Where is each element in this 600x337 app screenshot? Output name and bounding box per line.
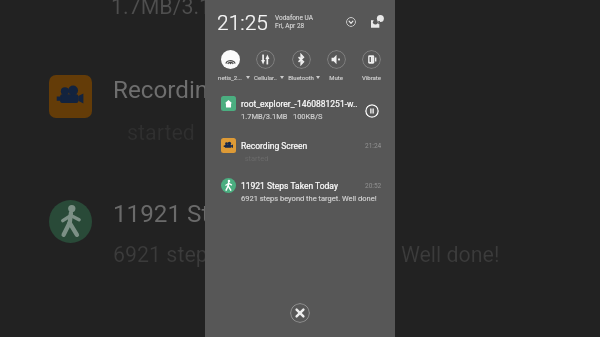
staticText: started: [127, 120, 195, 145]
button[interactable]: Cellular data: [256, 50, 275, 69]
staticText: 6921 steps beyond the target. Well done!: [241, 194, 391, 203]
button[interactable]: Wi-Fi: [221, 50, 240, 69]
staticText: 11921 Steps Taken Today: [241, 181, 365, 191]
button[interactable]: 11921 Steps Taken Today: [205, 172, 395, 207]
staticText: Bluetooth: [288, 74, 314, 81]
button[interactable]: Settings: [371, 15, 384, 28]
staticText: root_explorer_-1460881251-w..: [241, 99, 363, 109]
staticText: Recording Screen: [113, 76, 302, 104]
staticText: 1.7MB/3.1MB 100KB/S: [241, 112, 391, 121]
button[interactable]: Vibrate: [362, 50, 381, 69]
staticText: 20:52: [365, 182, 382, 190]
staticText: 21:24: [365, 142, 382, 150]
button[interactable]: Clear all notifications: [290, 303, 310, 323]
button[interactable]: Pause download: [365, 104, 379, 118]
staticText: Vodafone UA: [275, 14, 313, 22]
staticText: Cellular..: [254, 74, 277, 81]
button[interactable]: Bluetooth: [292, 50, 311, 69]
staticText: 1.7MB/3.1MB 100KB/S: [111, 0, 344, 19]
staticText: netis_2...: [218, 74, 242, 81]
button[interactable]: Expand quick settings: [346, 17, 356, 27]
button[interactable]: root_explorer_-1460881251-w..: [205, 90, 395, 125]
button[interactable]: Mute: [327, 50, 346, 69]
button[interactable]: Recording Screen: [205, 132, 395, 167]
staticText: 6921 steps beyond the target. Well done!: [113, 242, 500, 267]
staticText: 11921 Steps Taken Today: [113, 200, 390, 228]
staticText: Mute: [329, 74, 343, 81]
staticText: Vibrate: [362, 74, 381, 81]
staticText: Fri, Apr 28: [275, 22, 305, 30]
staticText: 21:25: [217, 11, 269, 36]
staticText: Recording Screen: [241, 141, 365, 151]
